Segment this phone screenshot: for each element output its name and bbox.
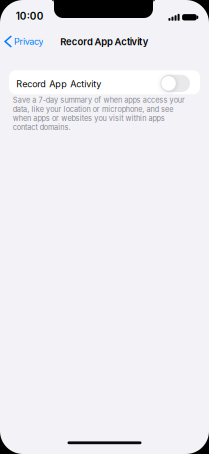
- staticText: when apps or websites you visit within a…: [13, 114, 165, 123]
- staticText: Record App Activity: [16, 78, 101, 89]
- staticText: contact domains.: [13, 123, 70, 132]
- staticText: 10:00: [16, 10, 44, 22]
- staticText: data, like your location or microphone, …: [13, 105, 173, 114]
- staticText: Privacy: [14, 36, 43, 47]
- button[interactable]: Back: [5, 36, 43, 47]
- staticText: Record App Activity: [60, 36, 149, 48]
- staticText: Save a 7-day summary of when apps access…: [13, 96, 185, 105]
- button[interactable]: Record App Activity: [161, 75, 190, 92]
